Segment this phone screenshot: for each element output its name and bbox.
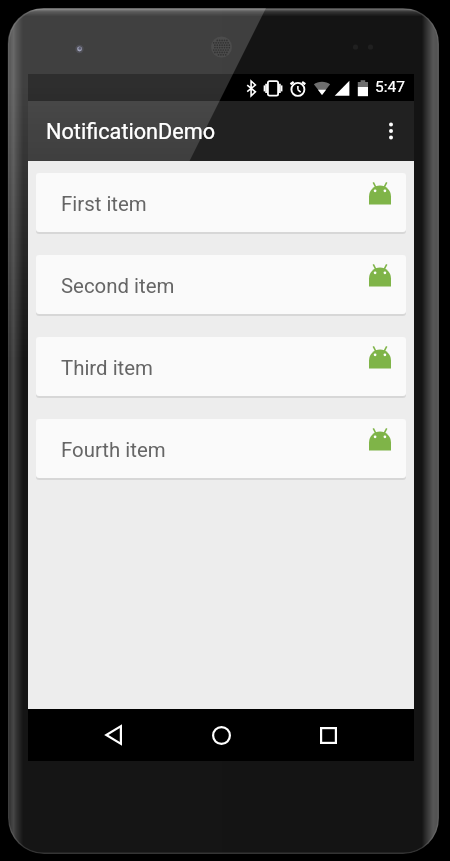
staticText: First item (61, 192, 147, 216)
button[interactable]: First item (36, 173, 406, 232)
button[interactable]: Back (82, 709, 144, 761)
staticText: Third item (61, 356, 153, 380)
staticText: Fourth item (61, 438, 166, 462)
button[interactable]: Third item (36, 337, 406, 396)
staticText: 5:47 (375, 78, 405, 96)
button[interactable]: Recent apps (297, 709, 359, 761)
button[interactable]: Fourth item (36, 419, 406, 478)
button[interactable]: Home (190, 709, 252, 761)
button[interactable]: More options (366, 101, 414, 161)
staticText: Second item (61, 274, 175, 298)
staticText: NotificationDemo (46, 119, 216, 144)
button[interactable]: Second item (36, 255, 406, 314)
